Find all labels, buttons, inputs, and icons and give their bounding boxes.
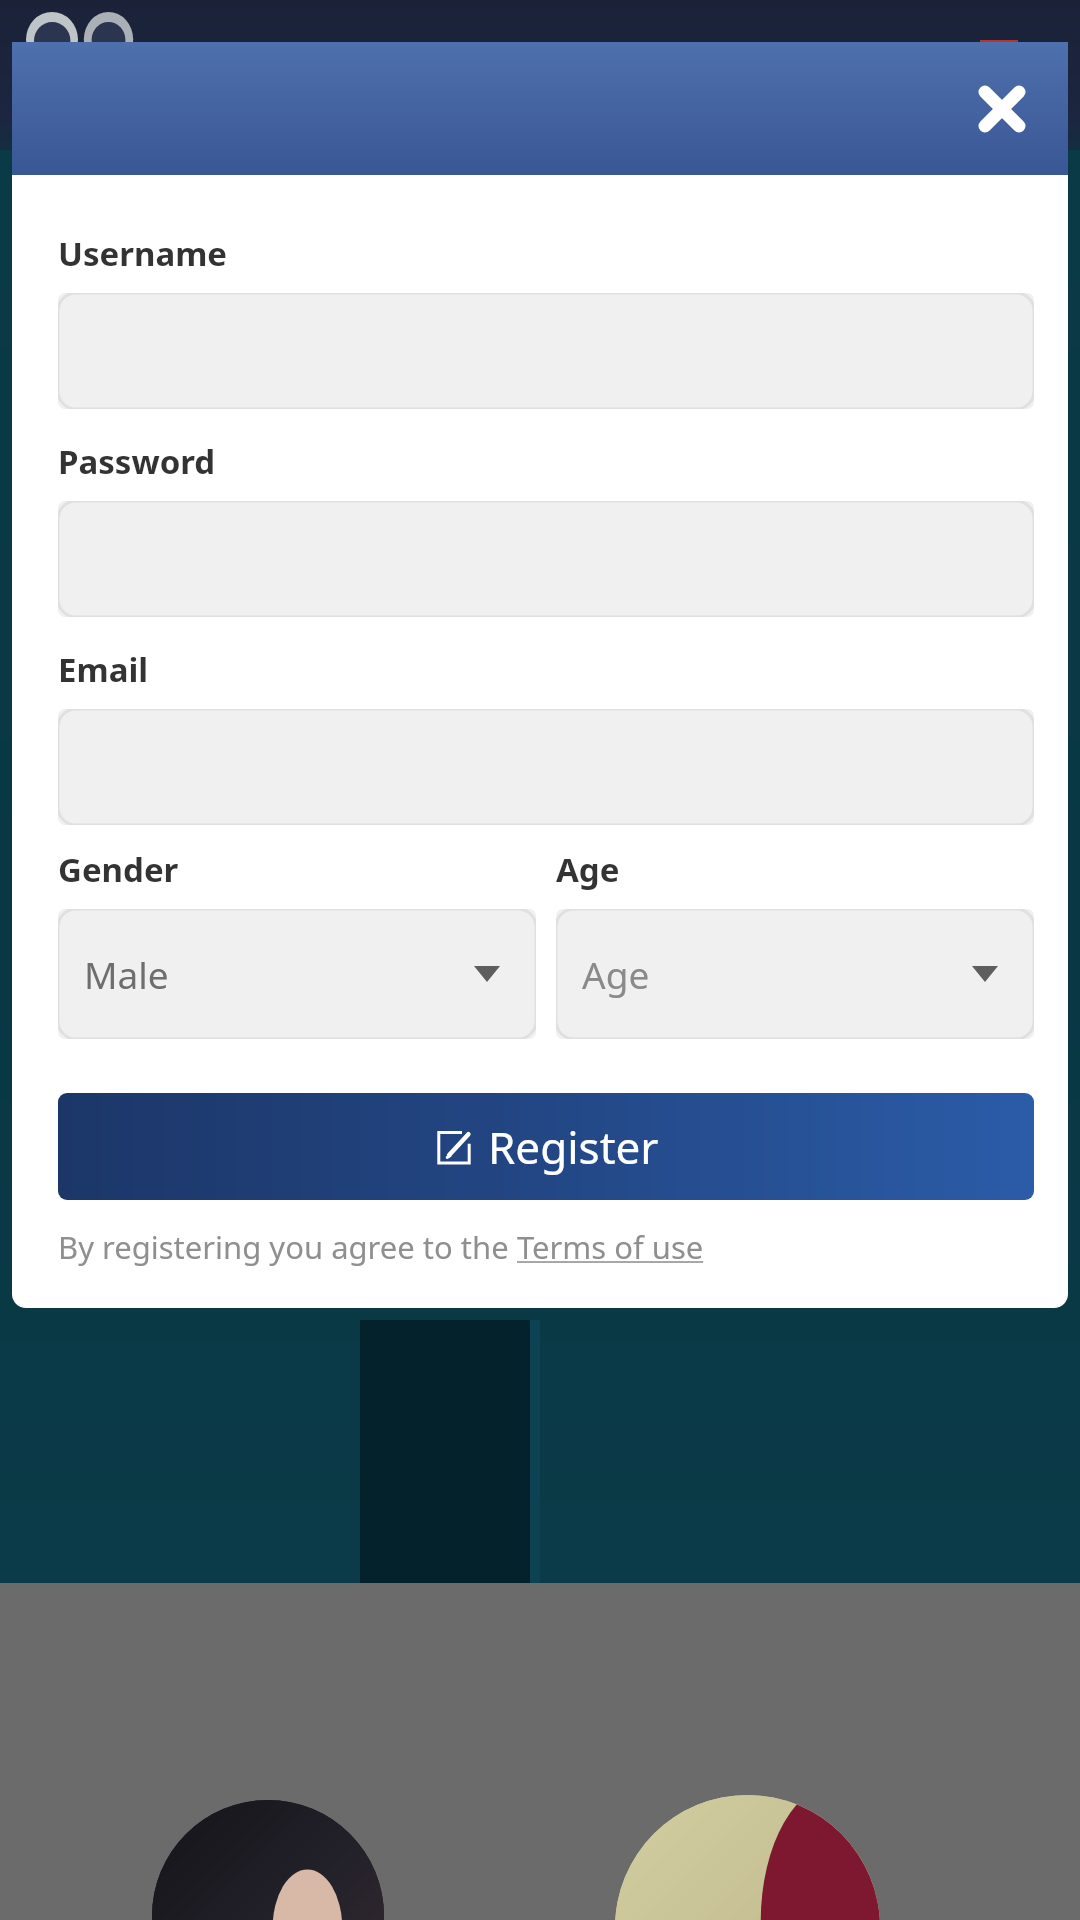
staticText: Gender <box>58 847 179 892</box>
staticText: Age <box>582 949 650 999</box>
button[interactable]: Profile photo <box>152 1800 384 1920</box>
button[interactable]: Register <box>58 1093 1034 1200</box>
button[interactable]: Terms of use <box>517 1226 704 1268</box>
staticText: Register <box>488 1117 659 1177</box>
button[interactable]: Male <box>58 909 536 1039</box>
staticText: Email <box>58 647 149 692</box>
staticText: Male <box>84 949 169 999</box>
staticText: Username <box>58 231 228 276</box>
staticText: By registering you agree to the <box>58 1226 517 1268</box>
button[interactable]: Age <box>556 909 1034 1039</box>
staticText: Age <box>556 847 620 892</box>
button[interactable]: Close <box>964 71 1040 147</box>
staticText: Terms of use <box>517 1226 704 1268</box>
button[interactable]: Profile photo <box>615 1795 880 1920</box>
staticText: Password <box>58 439 216 484</box>
